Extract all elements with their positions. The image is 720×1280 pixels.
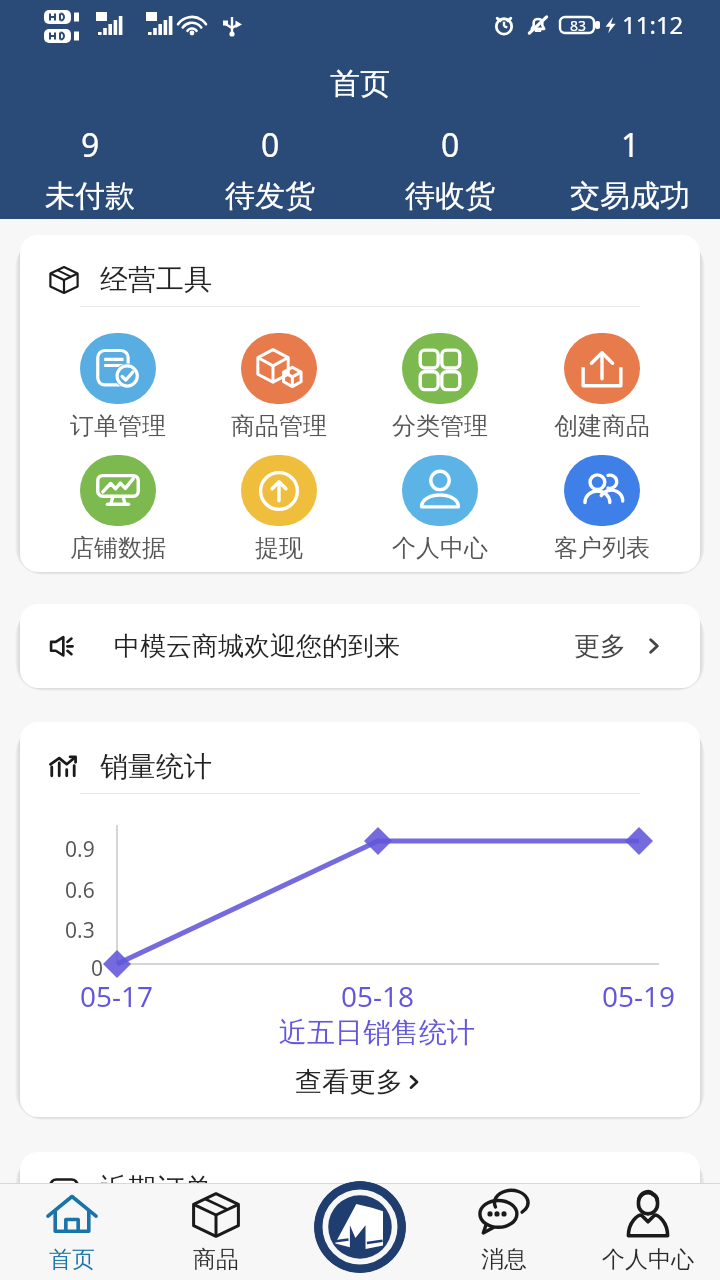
staticText: 1 xyxy=(621,123,640,167)
button[interactable]: 商品管理 xyxy=(198,333,359,441)
staticText: 商品管理 xyxy=(231,411,327,441)
staticText: 更多 xyxy=(574,630,626,663)
staticText: 创建商品 xyxy=(554,411,650,441)
staticText: 0.9 xyxy=(65,835,95,864)
staticText: 首页 xyxy=(330,65,390,103)
button[interactable]: 提现 xyxy=(198,455,359,563)
staticText: 首页 xyxy=(49,1245,95,1274)
staticText: 0 xyxy=(441,123,460,167)
button[interactable]: 中模云商城欢迎您的到来 xyxy=(20,604,700,688)
staticText: 订单管理 xyxy=(70,411,166,441)
staticText: 83 xyxy=(570,16,587,35)
button[interactable]: 1 xyxy=(540,123,720,215)
staticText: 05-18 xyxy=(341,977,415,1015)
staticText: 未付款 xyxy=(45,177,135,215)
staticText: 交易成功 xyxy=(570,177,690,215)
button[interactable]: 个人中心 xyxy=(576,1187,720,1274)
staticText: 11:12 xyxy=(622,8,684,41)
staticText: 待收货 xyxy=(405,177,495,215)
button[interactable]: 0 xyxy=(180,123,360,215)
staticText: 消息 xyxy=(481,1245,527,1274)
button[interactable]: 订单管理 xyxy=(37,333,198,441)
staticText: 0.6 xyxy=(65,876,95,905)
staticText: 中模云商城欢迎您的到来 xyxy=(114,630,400,663)
staticText: 05-19 xyxy=(602,977,676,1015)
button[interactable]: 客户列表 xyxy=(521,455,683,563)
staticText: 经营工具 xyxy=(100,262,212,297)
staticText: 分类管理 xyxy=(392,411,488,441)
staticText: 查看更多 xyxy=(295,1065,403,1099)
button[interactable]: 0 xyxy=(360,123,540,215)
button[interactable]: 消息 xyxy=(432,1187,576,1274)
button[interactable]: 商城 xyxy=(314,1181,406,1273)
staticText: 0 xyxy=(261,123,280,167)
button[interactable]: 分类管理 xyxy=(359,333,521,441)
staticText: 个人中心 xyxy=(392,533,488,563)
staticText: 0 xyxy=(91,954,104,983)
button[interactable]: 店铺数据 xyxy=(37,455,198,563)
staticText: 近期订单 xyxy=(100,1171,212,1206)
staticText: 提现 xyxy=(255,533,303,563)
staticText: 店铺数据 xyxy=(70,533,166,563)
staticText: 个人中心 xyxy=(602,1245,694,1274)
button[interactable]: 查看更多 xyxy=(20,1065,700,1099)
staticText: 05-17 xyxy=(80,977,154,1015)
button[interactable]: 个人中心 xyxy=(359,455,521,563)
button[interactable]: 9 xyxy=(0,123,180,215)
button[interactable]: 商品 xyxy=(144,1187,288,1274)
staticText: 商品 xyxy=(193,1245,239,1274)
staticText: 0.3 xyxy=(65,916,95,945)
staticText: 销量统计 xyxy=(100,749,212,784)
button[interactable]: 首页 xyxy=(0,1187,144,1274)
staticText: 9 xyxy=(81,123,100,167)
staticText: 待发货 xyxy=(225,177,315,215)
staticText: 客户列表 xyxy=(554,533,650,563)
button[interactable]: 创建商品 xyxy=(521,333,683,441)
staticText: 近五日销售统计 xyxy=(279,1015,475,1050)
